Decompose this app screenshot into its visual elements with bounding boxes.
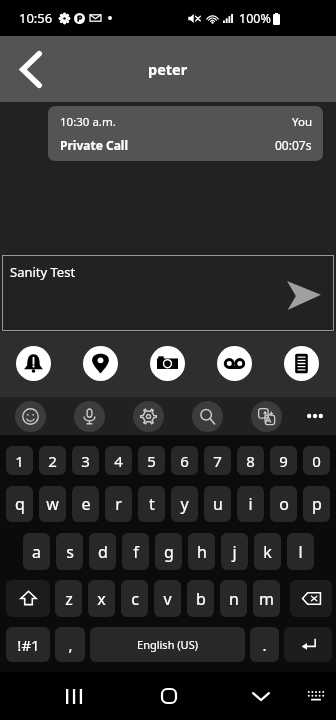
- button[interactable]: e: [72, 486, 99, 522]
- staticText: s: [66, 541, 74, 563]
- button[interactable]: Alert: [16, 346, 51, 381]
- button[interactable]: Backspace: [290, 580, 332, 617]
- button[interactable]: v: [154, 580, 181, 617]
- button[interactable]: 2: [39, 446, 66, 475]
- staticText: m: [259, 588, 274, 610]
- button[interactable]: Settings: [133, 401, 164, 432]
- button[interactable]: a: [23, 533, 50, 570]
- button[interactable]: English (US): [90, 627, 245, 662]
- button[interactable]: x: [88, 580, 115, 617]
- staticText: 10:30 a.m.: [60, 114, 116, 130]
- button[interactable]: 0: [303, 446, 330, 475]
- staticText: l: [298, 541, 303, 563]
- button[interactable]: Search: [192, 401, 223, 432]
- button[interactable]: Shift: [6, 580, 50, 617]
- button[interactable]: p: [303, 486, 330, 522]
- button[interactable]: Translate: [251, 401, 282, 432]
- button[interactable]: Enter: [284, 627, 332, 662]
- button[interactable]: Home: [151, 678, 187, 714]
- button[interactable]: Voicemail: [217, 346, 252, 381]
- button[interactable]: y: [171, 486, 198, 522]
- button[interactable]: Send: [280, 271, 328, 319]
- staticText: 5: [147, 451, 156, 471]
- button[interactable]: j: [221, 533, 248, 570]
- button[interactable]: Location: [83, 346, 118, 381]
- button[interactable]: n: [220, 580, 247, 617]
- button[interactable]: w: [39, 486, 66, 522]
- button[interactable]: m: [253, 580, 280, 617]
- button[interactable]: Camera: [150, 346, 185, 381]
- staticText: 100%: [239, 10, 271, 27]
- button[interactable]: 5: [138, 446, 165, 475]
- button[interactable]: c: [121, 580, 148, 617]
- button[interactable]: z: [55, 580, 82, 617]
- staticText: k: [263, 541, 272, 563]
- button[interactable]: k: [254, 533, 281, 570]
- button[interactable]: !#1: [6, 627, 50, 662]
- button[interactable]: 1: [6, 446, 33, 475]
- button[interactable]: 8: [237, 446, 264, 475]
- button[interactable]: Sanity Test: [2, 255, 334, 331]
- button[interactable]: t: [138, 486, 165, 522]
- button[interactable]: u: [204, 486, 231, 522]
- staticText: b: [196, 588, 206, 610]
- button[interactable]: Emoji: [15, 401, 46, 432]
- button[interactable]: Back: [6, 44, 56, 94]
- button[interactable]: f: [122, 533, 149, 570]
- button[interactable]: Switch keyboard: [298, 678, 334, 714]
- button[interactable]: b: [187, 580, 214, 617]
- button[interactable]: r: [105, 486, 132, 522]
- staticText: 10:56: [19, 9, 53, 27]
- staticText: z: [65, 588, 73, 610]
- staticText: v: [163, 588, 172, 610]
- staticText: d: [98, 541, 108, 563]
- button[interactable]: Document: [284, 346, 319, 381]
- button[interactable]: d: [89, 533, 116, 570]
- staticText: 8: [246, 451, 255, 471]
- staticText: peter: [148, 59, 188, 79]
- button[interactable]: s: [56, 533, 83, 570]
- button[interactable]: i: [237, 486, 264, 522]
- staticText: c: [131, 588, 139, 610]
- staticText: x: [97, 588, 106, 610]
- staticText: w: [46, 493, 59, 515]
- button[interactable]: 4: [105, 446, 132, 475]
- button[interactable]: q: [6, 486, 33, 522]
- staticText: 6: [180, 451, 189, 471]
- staticText: t: [149, 493, 155, 515]
- staticText: 4: [114, 451, 123, 471]
- staticText: You: [292, 114, 312, 130]
- staticText: f: [133, 541, 139, 563]
- button[interactable]: More options: [298, 399, 332, 433]
- staticText: o: [279, 493, 289, 515]
- staticText: y: [180, 493, 189, 515]
- staticText: ,: [68, 635, 73, 655]
- button[interactable]: o: [270, 486, 297, 522]
- button[interactable]: 10:30 a.m.: [48, 106, 323, 161]
- button[interactable]: .: [250, 627, 279, 662]
- button[interactable]: Voice input: [74, 401, 105, 432]
- button[interactable]: g: [155, 533, 182, 570]
- button[interactable]: Hide keyboard: [243, 678, 279, 714]
- button[interactable]: ,: [55, 627, 85, 662]
- button[interactable]: 7: [204, 446, 231, 475]
- staticText: 2: [48, 451, 57, 471]
- staticText: .: [262, 635, 267, 655]
- staticText: 1: [15, 451, 24, 471]
- staticText: h: [197, 541, 207, 563]
- staticText: a: [32, 541, 41, 563]
- staticText: g: [164, 541, 174, 563]
- staticText: r: [115, 493, 122, 515]
- staticText: 7: [213, 451, 222, 471]
- staticText: i: [248, 493, 253, 515]
- button[interactable]: Recents: [56, 678, 92, 714]
- button[interactable]: l: [287, 533, 314, 570]
- staticText: q: [15, 493, 25, 515]
- button[interactable]: 3: [72, 446, 99, 475]
- button[interactable]: 6: [171, 446, 198, 475]
- button[interactable]: h: [188, 533, 215, 570]
- button[interactable]: 9: [270, 446, 297, 475]
- staticText: English (US): [137, 637, 198, 652]
- staticText: !#1: [17, 635, 40, 655]
- staticText: 0: [312, 451, 321, 471]
